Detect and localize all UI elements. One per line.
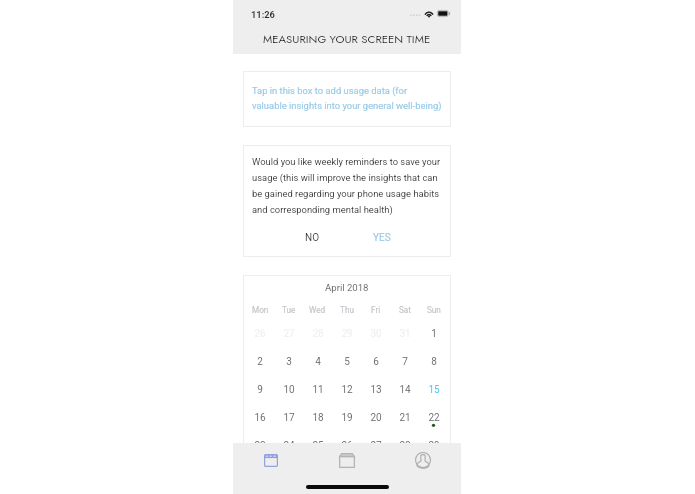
staticText: 2	[257, 356, 263, 368]
staticText: Tue	[282, 305, 296, 315]
button[interactable]: 16	[246, 404, 274, 432]
staticText: 27	[283, 328, 295, 340]
staticText: 19	[341, 412, 353, 424]
button[interactable]: Tap in this box to add usage data (for v…	[243, 71, 451, 127]
staticText: 20	[370, 412, 382, 424]
button[interactable]: 24	[274, 432, 303, 460]
button[interactable]: 20	[361, 404, 390, 432]
staticText: 24	[283, 440, 295, 452]
button[interactable]: 10	[274, 376, 303, 404]
staticText: 18	[312, 412, 324, 424]
button[interactable]: 2	[246, 348, 274, 376]
staticText: 4	[315, 356, 321, 368]
staticText: 25	[312, 440, 324, 452]
button[interactable]: NO	[277, 232, 347, 244]
button[interactable]: 3	[274, 348, 303, 376]
button[interactable]: 4	[303, 348, 332, 376]
button[interactable]: 22	[419, 404, 448, 432]
button[interactable]: Account	[385, 443, 461, 477]
button[interactable]: 13	[361, 376, 390, 404]
staticText: 28	[399, 440, 411, 452]
staticText: Wed	[309, 305, 326, 315]
button[interactable]: 12	[332, 376, 361, 404]
staticText: Would you like weekly reminders to save …	[252, 156, 442, 215]
button[interactable]: 26	[246, 320, 274, 348]
staticText: 6	[373, 356, 379, 368]
staticText: NO	[305, 232, 320, 244]
staticText: Sat	[399, 305, 411, 315]
button[interactable]: 5	[332, 348, 361, 376]
staticText: MEASURING YOUR SCREEN TIME	[263, 31, 431, 47]
staticText: 11:26	[251, 9, 275, 20]
staticText: 13	[370, 384, 382, 396]
staticText: 5	[344, 356, 350, 368]
staticText: Mon	[252, 305, 269, 315]
button[interactable]: 1	[419, 320, 448, 348]
staticText: 11	[312, 384, 324, 396]
staticText: Fri	[371, 305, 381, 315]
button[interactable]: 29	[332, 320, 361, 348]
staticText: 28	[312, 328, 324, 340]
staticText: 1	[431, 328, 437, 340]
button[interactable]: 26	[332, 432, 361, 460]
button[interactable]: 29	[419, 432, 448, 460]
staticText: 29	[341, 328, 353, 340]
button[interactable]: Reports	[309, 443, 385, 477]
staticText: Thu	[340, 305, 354, 315]
staticText: 12	[341, 384, 353, 396]
staticText: 16	[254, 412, 266, 424]
button[interactable]: 11	[303, 376, 332, 404]
staticText: 23	[254, 440, 266, 452]
button[interactable]: 28	[390, 432, 419, 460]
button[interactable]: 6	[361, 348, 390, 376]
button[interactable]: 18	[303, 404, 332, 432]
staticText: 26	[254, 328, 266, 340]
button[interactable]: 23	[246, 432, 274, 460]
button[interactable]: Calendar	[233, 443, 309, 477]
staticText: April 2018	[325, 282, 369, 293]
button[interactable]: 7	[390, 348, 419, 376]
button[interactable]: 28	[303, 320, 332, 348]
button[interactable]: YES	[347, 232, 417, 244]
button[interactable]: 30	[361, 320, 390, 348]
staticText: 3	[286, 356, 292, 368]
staticText: 21	[399, 412, 411, 424]
button[interactable]: 21	[390, 404, 419, 432]
button[interactable]: 27	[361, 432, 390, 460]
staticText: 8	[431, 356, 437, 368]
staticText: Sun	[427, 305, 441, 315]
staticText: YES	[373, 232, 391, 244]
staticText: 10	[283, 384, 295, 396]
button[interactable]: 25	[303, 432, 332, 460]
button[interactable]: 15	[419, 376, 448, 404]
staticText: 29	[428, 440, 440, 452]
button[interactable]: 17	[274, 404, 303, 432]
staticText: 31	[399, 328, 411, 340]
staticText: 14	[399, 384, 411, 396]
button[interactable]: 8	[419, 348, 448, 376]
staticText: 15	[428, 384, 440, 396]
staticText: 26	[341, 440, 353, 452]
staticText: 27	[370, 440, 382, 452]
staticText: 22	[428, 412, 440, 424]
staticText: 30	[370, 328, 382, 340]
button[interactable]: 9	[246, 376, 274, 404]
button[interactable]: 14	[390, 376, 419, 404]
staticText: Tap in this box to add usage data (for v…	[252, 85, 442, 111]
staticText: 7	[402, 356, 408, 368]
staticText: 9	[257, 384, 263, 396]
button[interactable]: 19	[332, 404, 361, 432]
staticText: 17	[283, 412, 295, 424]
